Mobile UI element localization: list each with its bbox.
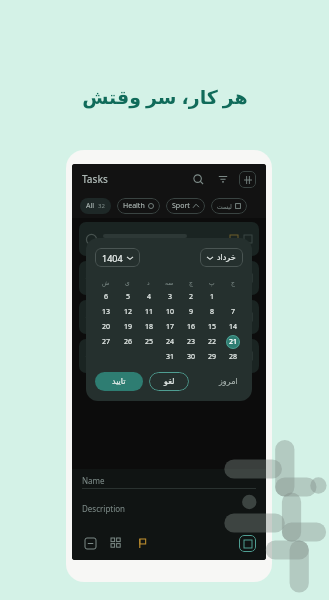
- button[interactable]: 4: [142, 290, 156, 304]
- button[interactable]: 19: [121, 320, 135, 334]
- button[interactable]: لیست: [211, 198, 247, 214]
- staticText: 1404: [102, 252, 123, 264]
- staticText: 11: [145, 307, 154, 317]
- button[interactable]: 27: [99, 335, 113, 349]
- staticText: Description: [82, 503, 126, 514]
- button[interactable]: 5: [121, 290, 135, 304]
- button[interactable]: تایید: [95, 372, 143, 391]
- button[interactable]: 20: [99, 320, 113, 334]
- staticText: 8: [210, 307, 215, 317]
- button[interactable]: Pick date: [82, 535, 98, 551]
- button[interactable]: 16: [184, 320, 198, 334]
- button[interactable]: 10: [163, 305, 177, 319]
- button[interactable]: 9: [184, 305, 198, 319]
- button[interactable]: Save task: [239, 535, 256, 552]
- staticText: All: [86, 201, 95, 211]
- button[interactable]: امروز: [214, 374, 243, 389]
- button[interactable]: 28: [226, 350, 240, 364]
- button[interactable]: 24: [163, 335, 177, 349]
- staticText: 20: [102, 322, 111, 332]
- staticText: د: [147, 279, 150, 286]
- staticText: Health: [123, 201, 145, 211]
- button[interactable]: 30: [184, 350, 198, 364]
- staticText: لغو: [164, 377, 175, 386]
- staticText: 15: [208, 322, 217, 332]
- staticText: 27: [102, 337, 111, 347]
- button[interactable]: 18: [142, 320, 156, 334]
- staticText: 3: [168, 292, 173, 302]
- button[interactable]: 7: [226, 305, 240, 319]
- staticText: 16: [187, 322, 196, 332]
- button[interactable]: Priority flag: [134, 535, 150, 551]
- staticText: Tasks: [82, 172, 108, 186]
- button[interactable]: 29: [205, 350, 219, 364]
- staticText: 29: [208, 352, 217, 362]
- button[interactable]: Filter: [214, 170, 232, 188]
- button[interactable]: Sport: [166, 198, 205, 214]
- button[interactable]: 1: [205, 290, 219, 304]
- button[interactable]: 26: [121, 335, 135, 349]
- staticText: هر کار، سر وقتش: [82, 84, 248, 110]
- staticText: پ: [209, 279, 215, 286]
- staticText: 17: [166, 322, 175, 332]
- staticText: چ: [189, 279, 193, 286]
- staticText: 2: [189, 292, 194, 302]
- button[interactable]: 11: [142, 305, 156, 319]
- button[interactable]: 31: [163, 350, 177, 364]
- staticText: سه: [165, 279, 174, 286]
- staticText: 7: [231, 307, 236, 317]
- button[interactable]: Category: [108, 535, 124, 551]
- staticText: ی: [125, 279, 130, 286]
- staticText: 21: [229, 337, 238, 347]
- staticText: ج: [231, 279, 235, 286]
- button[interactable]: 6: [99, 290, 113, 304]
- staticText: 13: [102, 307, 111, 317]
- staticText: 23: [187, 337, 196, 347]
- button[interactable]: 25: [142, 335, 156, 349]
- staticText: 9: [189, 307, 194, 317]
- button[interactable]: [79, 339, 259, 373]
- staticText: 25: [145, 337, 154, 347]
- staticText: 22: [208, 337, 217, 347]
- button[interactable]: 14: [226, 320, 240, 334]
- staticText: 24: [166, 337, 175, 347]
- staticText: 6: [104, 292, 109, 302]
- staticText: 19: [124, 322, 133, 332]
- button[interactable]: 17: [163, 320, 177, 334]
- button[interactable]: 15: [205, 320, 219, 334]
- button[interactable]: [79, 261, 259, 295]
- staticText: خرداد: [217, 253, 236, 262]
- button[interactable]: View layout: [239, 171, 256, 188]
- button[interactable]: لغو: [149, 372, 189, 391]
- button[interactable]: 21: [226, 335, 240, 349]
- button[interactable]: خرداد: [200, 248, 243, 267]
- staticText: 12: [124, 307, 133, 317]
- button[interactable]: [79, 222, 259, 256]
- button[interactable]: 2: [184, 290, 198, 304]
- staticText: لیست: [217, 203, 232, 210]
- staticText: Name: [82, 475, 105, 486]
- button[interactable]: Health: [117, 198, 160, 214]
- button[interactable]: Search: [189, 170, 207, 188]
- button[interactable]: 1404: [95, 248, 140, 267]
- staticText: امروز: [219, 377, 238, 386]
- button[interactable]: All: [80, 198, 111, 214]
- staticText: 14: [229, 322, 238, 332]
- button[interactable]: 23: [184, 335, 198, 349]
- staticText: 1: [210, 292, 215, 302]
- button[interactable]: 12: [121, 305, 135, 319]
- staticText: 30: [187, 352, 196, 362]
- button[interactable]: 3: [163, 290, 177, 304]
- button[interactable]: 8: [205, 305, 219, 319]
- staticText: تایید: [112, 377, 126, 386]
- staticText: 26: [124, 337, 133, 347]
- staticText: 32: [98, 202, 105, 210]
- staticText: 4: [147, 292, 152, 302]
- button[interactable]: 13: [99, 305, 113, 319]
- staticText: 28: [229, 352, 238, 362]
- staticText: 5: [126, 292, 131, 302]
- staticText: 10: [166, 307, 175, 317]
- button[interactable]: [79, 300, 259, 334]
- staticText: ش: [102, 279, 110, 286]
- button[interactable]: 22: [205, 335, 219, 349]
